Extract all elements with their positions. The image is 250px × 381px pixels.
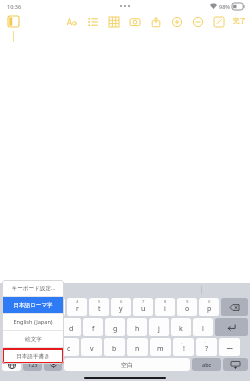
staticText: キーボード設定... bbox=[11, 284, 56, 292]
staticText: a bbox=[25, 324, 29, 334]
staticText: h bbox=[135, 324, 140, 334]
button[interactable]: 日本語手書き bbox=[2, 348, 64, 364]
button[interactable]: Format text bbox=[65, 15, 78, 28]
button[interactable]: 絵文字 bbox=[2, 331, 64, 347]
staticText: 5 bbox=[98, 299, 101, 305]
button[interactable]: Share bbox=[149, 15, 162, 28]
staticText: 2 bbox=[32, 299, 35, 305]
button[interactable]: 5 bbox=[89, 298, 109, 316]
button[interactable]: a bbox=[16, 318, 37, 336]
button[interactable]: k bbox=[171, 318, 191, 336]
staticText: g bbox=[113, 324, 118, 334]
staticText: o bbox=[185, 304, 190, 314]
staticText: e bbox=[53, 304, 57, 314]
staticText: c bbox=[67, 344, 71, 354]
staticText: x bbox=[44, 344, 48, 354]
button[interactable]: 空白 bbox=[64, 358, 190, 371]
button[interactable]: Dictation bbox=[44, 358, 62, 371]
button[interactable]: m bbox=[150, 338, 171, 356]
button[interactable]: 3 bbox=[45, 298, 65, 316]
staticText: q bbox=[9, 304, 14, 314]
staticText: i bbox=[164, 304, 166, 314]
staticText: p bbox=[207, 304, 212, 314]
button[interactable]: Return bbox=[215, 318, 248, 336]
button[interactable]: Insert table bbox=[107, 15, 120, 28]
button[interactable]: abc bbox=[192, 358, 221, 371]
button[interactable]: d bbox=[61, 318, 81, 336]
staticText: w bbox=[30, 304, 36, 314]
staticText: 日本語ローマ字 bbox=[13, 302, 53, 309]
button[interactable]: f bbox=[83, 318, 103, 336]
staticText: 。 bbox=[204, 339, 209, 344]
button[interactable]: 0 bbox=[199, 298, 219, 316]
button[interactable]: 。 bbox=[196, 338, 217, 356]
staticText: 空白 bbox=[121, 361, 133, 369]
button[interactable]: n bbox=[127, 338, 148, 356]
button[interactable]: 9 bbox=[177, 298, 197, 316]
button[interactable]: ー bbox=[219, 338, 240, 356]
button[interactable]: x bbox=[35, 338, 56, 356]
button[interactable]: 123 bbox=[23, 358, 42, 371]
button[interactable]: 1 bbox=[2, 298, 21, 316]
staticText: 、 bbox=[181, 339, 186, 344]
button[interactable]: Show sidebar bbox=[6, 14, 20, 28]
button[interactable]: s bbox=[39, 318, 59, 336]
button[interactable]: v bbox=[81, 338, 102, 356]
staticText: English (Japan) bbox=[13, 318, 53, 326]
button[interactable]: 完了 bbox=[233, 14, 246, 28]
staticText: y bbox=[119, 304, 123, 314]
staticText: ー bbox=[226, 344, 233, 353]
button[interactable]: c bbox=[58, 338, 79, 356]
button[interactable]: 8 bbox=[155, 298, 175, 316]
staticText: t bbox=[98, 304, 101, 314]
button[interactable]: l bbox=[193, 318, 213, 336]
staticText: s bbox=[47, 324, 51, 334]
staticText: 4 bbox=[76, 299, 79, 305]
button[interactable]: English (Japan) bbox=[2, 314, 64, 330]
button[interactable]: More bbox=[212, 15, 225, 28]
staticText: m bbox=[157, 344, 164, 354]
staticText: z bbox=[20, 344, 24, 354]
button[interactable]: b bbox=[104, 338, 125, 356]
button[interactable]: 4 bbox=[67, 298, 87, 316]
staticText: j bbox=[158, 324, 160, 334]
staticText: l bbox=[202, 324, 204, 334]
button[interactable]: 6 bbox=[111, 298, 131, 316]
button[interactable]: Switch keyboard bbox=[2, 358, 21, 371]
button[interactable]: Insert bbox=[170, 15, 183, 28]
staticText: r bbox=[76, 304, 79, 314]
staticText: 7 bbox=[142, 299, 145, 305]
staticText: v bbox=[90, 344, 94, 354]
staticText: d bbox=[69, 324, 74, 334]
staticText: f bbox=[92, 324, 95, 334]
button[interactable]: h bbox=[127, 318, 147, 336]
button[interactable]: Delete bbox=[221, 298, 248, 316]
button[interactable]: キーボード設定... bbox=[2, 280, 64, 296]
staticText: 絵文字 bbox=[25, 336, 42, 343]
button[interactable]: 、 bbox=[173, 338, 194, 356]
staticText: n bbox=[135, 344, 140, 354]
button[interactable]: j bbox=[149, 318, 169, 336]
button[interactable]: 7 bbox=[133, 298, 153, 316]
staticText: u bbox=[141, 304, 146, 314]
button[interactable]: z bbox=[11, 338, 33, 356]
button[interactable]: Insert list bbox=[86, 15, 99, 28]
button[interactable]: Collaborate bbox=[191, 15, 204, 28]
button[interactable]: Hide keyboard bbox=[223, 358, 248, 371]
staticText: abc bbox=[202, 361, 212, 368]
staticText: ? bbox=[205, 344, 209, 354]
staticText: 9 bbox=[186, 299, 189, 305]
button[interactable]: Insert media bbox=[128, 15, 141, 28]
staticText: k bbox=[179, 324, 183, 334]
staticText: 8 bbox=[164, 299, 167, 305]
staticText: 98% bbox=[219, 3, 230, 10]
button[interactable]: g bbox=[105, 318, 125, 336]
staticText: 日本語手書き bbox=[16, 353, 50, 360]
button[interactable]: 2 bbox=[23, 298, 43, 316]
button[interactable]: 日本語ローマ字 bbox=[2, 297, 64, 313]
staticText: 10:36 bbox=[7, 3, 22, 10]
staticText: 0 bbox=[208, 299, 211, 305]
staticText: 6 bbox=[120, 299, 123, 305]
